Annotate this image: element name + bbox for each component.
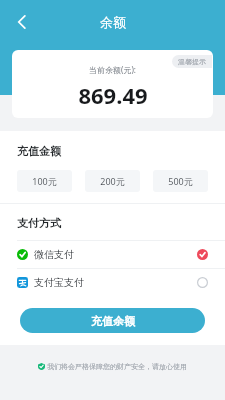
staticText: 余额 [100, 14, 126, 30]
staticText: 500元 [168, 175, 193, 187]
staticText: 微信支付 [34, 248, 74, 261]
staticText: 充值余额 [91, 314, 135, 328]
staticText: 100元 [32, 175, 57, 187]
button[interactable]: 充值余额 [20, 308, 205, 333]
staticText: 支付宝支付 [34, 276, 84, 289]
button[interactable]: 200元 [85, 170, 140, 192]
button[interactable]: 500元 [153, 170, 208, 192]
staticText: 869.49 [78, 80, 148, 110]
staticText: 支付方式 [17, 216, 61, 230]
staticText: 我们将会严格保障您的财产安全，请放心使用 [47, 362, 187, 371]
button[interactable]: 温馨提示 [172, 55, 212, 68]
staticText: 温馨提示 [178, 57, 206, 66]
button[interactable]: 100元 [17, 170, 72, 192]
staticText: 200元 [100, 175, 125, 187]
button[interactable]: Back [4, 4, 40, 40]
staticText: 充值金额 [17, 144, 61, 158]
button[interactable]: 支付宝支付 [0, 269, 225, 296]
staticText: 当前余额(元): [89, 64, 136, 75]
button[interactable]: 微信支付 [0, 241, 225, 268]
